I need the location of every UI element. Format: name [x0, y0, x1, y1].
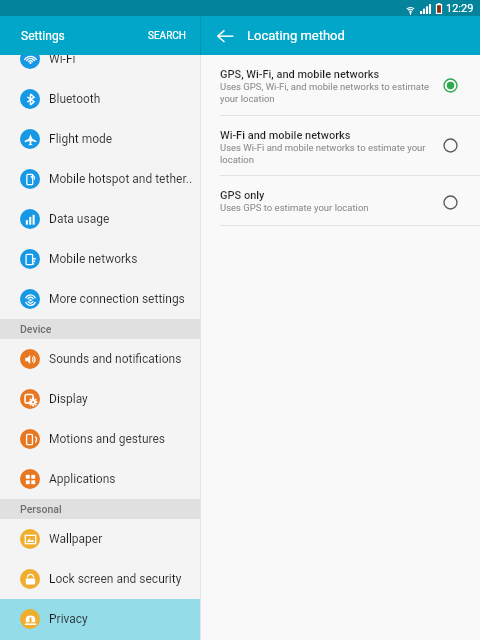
button[interactable]: Motions and gestures	[0, 419, 200, 459]
button[interactable]: Wi-Fi	[0, 55, 200, 79]
staticText: Wi-Fi	[49, 55, 76, 66]
button[interactable]: Display	[0, 379, 200, 419]
staticText: Lock screen and security	[49, 572, 182, 586]
staticText: Sounds and notifications	[49, 352, 182, 366]
button[interactable]: Sounds and notifications	[0, 339, 200, 379]
staticText: Display	[49, 392, 88, 406]
button[interactable]: Flight mode	[0, 119, 200, 159]
staticText: Flight mode	[49, 132, 113, 146]
staticText: Personal	[20, 503, 62, 515]
staticText: Mobile hotspot and tether..	[49, 172, 193, 186]
staticText: GPS only	[220, 189, 265, 202]
staticText: Uses GPS to estimate your location	[220, 202, 369, 213]
staticText: Device	[20, 323, 52, 335]
staticText: Applications	[49, 472, 116, 486]
button[interactable]: Applications	[0, 459, 200, 499]
staticText: Settings	[21, 29, 65, 43]
staticText: Motions and gestures	[49, 432, 166, 446]
button[interactable]: GPS, Wi-Fi, and mobile networks	[201, 55, 480, 116]
staticText: Wallpaper	[49, 532, 103, 546]
button[interactable]: More connection settings	[0, 279, 200, 319]
staticText: Locating method	[247, 28, 345, 43]
staticText: Bluetooth	[49, 92, 101, 106]
button[interactable]: Mobile hotspot and tether..	[0, 159, 200, 199]
staticText: GPS, Wi-Fi, and mobile networks	[220, 68, 380, 81]
button[interactable]: Back	[209, 19, 242, 52]
button[interactable]: Wallpaper	[0, 519, 200, 559]
button[interactable]: Privacy	[0, 599, 200, 639]
button[interactable]: SEARCH	[134, 22, 200, 50]
button[interactable]: Bluetooth	[0, 79, 200, 119]
staticText: Uses GPS, Wi-Fi, and mobile networks to …	[220, 81, 436, 104]
staticText: 12:29	[446, 2, 474, 15]
button[interactable]: GPS only	[201, 176, 480, 226]
button[interactable]: Lock screen and security	[0, 559, 200, 599]
staticText: SEARCH	[148, 30, 186, 42]
staticText: Privacy	[49, 612, 88, 626]
staticText: Data usage	[49, 212, 110, 226]
staticText: More connection settings	[49, 292, 185, 306]
staticText: Uses Wi-Fi and mobile networks to estima…	[220, 142, 436, 165]
staticText: Wi-Fi and mobile networks	[220, 129, 351, 142]
button[interactable]: Wi-Fi and mobile networks	[201, 116, 480, 176]
button[interactable]: Data usage	[0, 199, 200, 239]
button[interactable]: Mobile networks	[0, 239, 200, 279]
staticText: Mobile networks	[49, 252, 138, 266]
